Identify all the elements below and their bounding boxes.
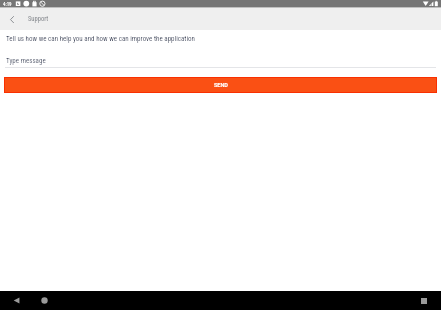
button[interactable]: Home	[37, 293, 52, 308]
staticText: Tell us how we can help you and how we c…	[6, 35, 195, 43]
staticText: 4:19	[3, 1, 12, 7]
staticText: SEND	[214, 82, 228, 88]
staticText: Type message	[6, 57, 46, 65]
staticText: Support	[28, 15, 49, 23]
button[interactable]: Navigate up	[0, 7, 24, 30]
button[interactable]: Type message	[5, 57, 436, 68]
button[interactable]: Back	[9, 293, 24, 308]
button[interactable]: SEND	[4, 77, 437, 93]
button[interactable]: Recent apps	[416, 293, 431, 308]
